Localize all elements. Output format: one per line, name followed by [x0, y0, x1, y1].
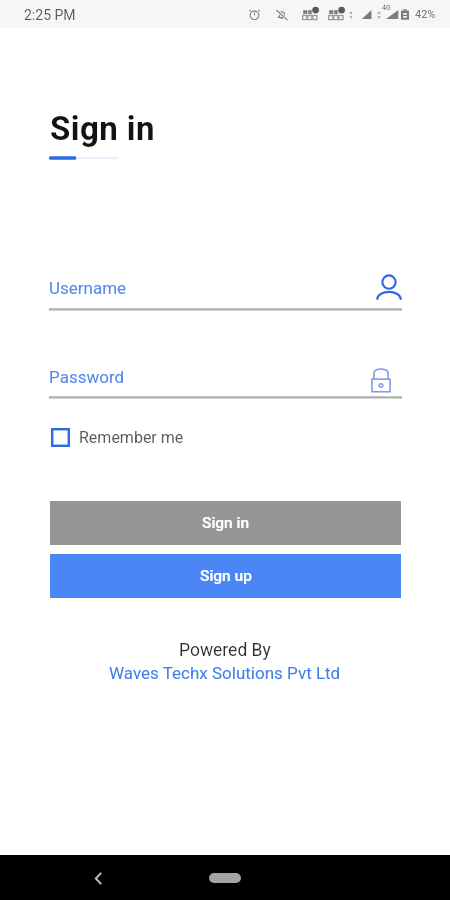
staticText: Remember me: [79, 428, 184, 447]
button[interactable]: Home: [209, 873, 241, 883]
other: Password: [371, 367, 391, 392]
button[interactable]: Waves Techx Solutions Pvt Ltd: [109, 663, 341, 683]
button[interactable]: Username: [49, 270, 402, 308]
button[interactable]: Password: [49, 359, 402, 397]
staticText: 4G: [382, 4, 391, 12]
staticText: Sign in: [202, 514, 250, 532]
button[interactable]: Sign in: [50, 501, 401, 545]
staticText: Password: [49, 367, 125, 387]
button[interactable]: Sign up: [50, 554, 401, 598]
other: Username: [376, 274, 402, 300]
button[interactable]: Remember me: [51, 422, 184, 452]
staticText: Username: [49, 278, 127, 298]
button[interactable]: Back: [82, 862, 114, 894]
staticText: 42%: [415, 8, 436, 21]
staticText: Powered By: [179, 640, 271, 661]
staticText: 2:25 PM: [24, 7, 76, 23]
staticText: Sign up: [200, 567, 252, 585]
staticText: Sign in: [50, 109, 155, 148]
